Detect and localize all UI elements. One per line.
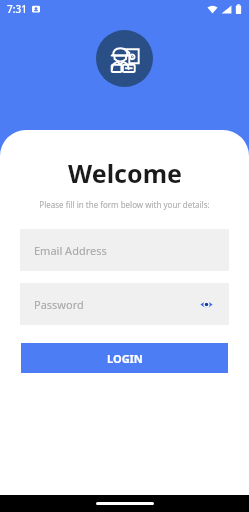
staticText: 7:31 <box>7 2 27 16</box>
button[interactable]: Show password <box>197 295 215 313</box>
staticText: Email Address <box>34 243 107 258</box>
button[interactable]: Email Address <box>20 229 229 271</box>
staticText: Welcome <box>68 156 182 190</box>
staticText: LOGIN <box>107 351 143 366</box>
button[interactable]: LOGIN <box>21 343 228 373</box>
staticText: Password <box>34 297 84 312</box>
staticText: Please fill in the form below with your … <box>39 199 210 210</box>
button[interactable]: Password <box>20 283 229 325</box>
